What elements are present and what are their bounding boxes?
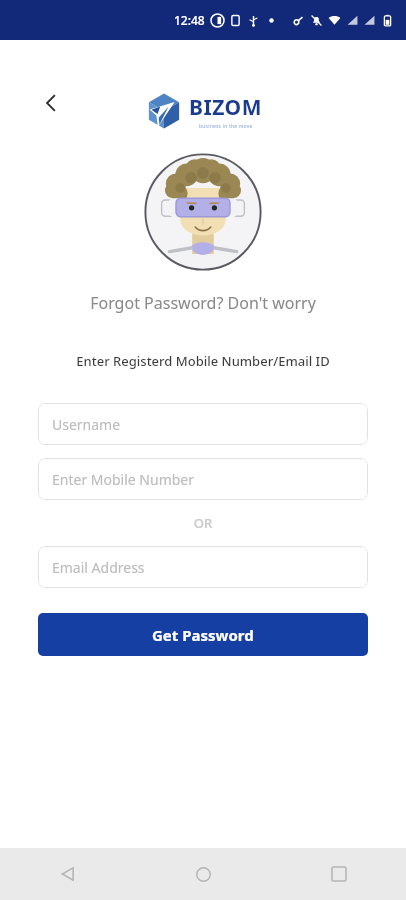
button[interactable]: Get Password (38, 613, 368, 656)
staticText: Enter Registerd Mobile Number/Email ID (0, 352, 406, 370)
staticText: OR (0, 514, 406, 532)
staticText: business in the move (199, 123, 253, 130)
staticText: Forgot Password? Don't worry (0, 292, 406, 314)
staticText: 12:48 (174, 12, 205, 28)
staticText: BIZOM (189, 93, 262, 122)
button[interactable]: Back (0, 848, 136, 900)
button[interactable]: Back (34, 86, 68, 120)
button[interactable]: Username (38, 403, 368, 445)
staticText: Get Password (152, 625, 254, 645)
button[interactable]: Recent apps (271, 848, 406, 900)
button[interactable]: Home (136, 848, 271, 900)
staticText: Username (52, 415, 121, 434)
button[interactable]: Enter Mobile Number (38, 458, 368, 500)
staticText: Email Address (52, 558, 145, 577)
button[interactable]: Email Address (38, 546, 368, 588)
staticText: Enter Mobile Number (52, 470, 195, 489)
